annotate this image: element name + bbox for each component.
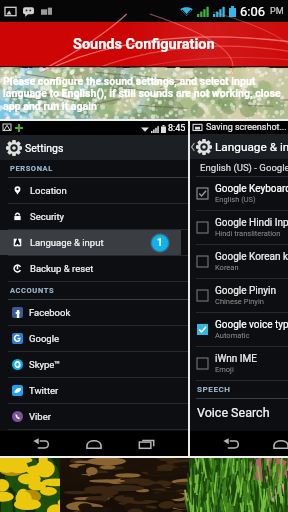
staticText: Saving screenshot... (206, 122, 287, 133)
button[interactable]: Back (190, 134, 288, 159)
staticText: Emoji (215, 365, 234, 374)
staticText: Please configure the sound settings, and… (3, 75, 286, 112)
staticText: Viber (29, 411, 51, 422)
button[interactable]: iWnn IME (190, 347, 288, 380)
staticText: 6:06 (240, 4, 266, 19)
button[interactable]: Recents (135, 432, 159, 456)
other: Back (191, 143, 195, 151)
button[interactable]: Location (0, 178, 188, 203)
button[interactable]: Back (29, 432, 53, 456)
staticText: Voice Search (197, 405, 270, 420)
staticText: 8:45 (168, 123, 186, 134)
button[interactable]: Google voice typing (190, 313, 288, 346)
staticText: Twitter (29, 385, 59, 396)
staticText: 1 (157, 237, 163, 249)
button[interactable]: Backup & reset (0, 256, 188, 281)
button[interactable]: Settings (0, 135, 188, 160)
staticText: WhatsApp (29, 437, 73, 448)
button[interactable]: Google Pinyin (190, 279, 288, 312)
staticText: Skype™ (29, 359, 61, 370)
staticText: English (US) - Google Keyboard (200, 162, 288, 173)
button[interactable]: Facebook (0, 300, 188, 325)
button[interactable]: Google Keyboard (190, 177, 288, 210)
staticText: SPEECH (197, 385, 231, 394)
staticText: Google Pinyin (215, 285, 276, 297)
staticText: Google voice typing (215, 319, 288, 331)
staticText: Settings (25, 142, 64, 154)
staticText: Hindi transliteration (215, 229, 281, 238)
button[interactable]: Google Hindi Input (190, 211, 288, 244)
button[interactable]: Home (82, 432, 106, 456)
button[interactable]: Language & input (0, 230, 188, 255)
button[interactable]: Voice Search (190, 399, 288, 425)
staticText: Google Korean keyb (215, 251, 288, 263)
button[interactable]: Security (0, 204, 188, 229)
button[interactable]: Google Korean keyb (190, 245, 288, 278)
staticText: Language & input (30, 237, 104, 248)
staticText: Chinese Pinyin (215, 297, 264, 306)
staticText: Backup & reset (30, 263, 94, 274)
staticText: English (US) (215, 195, 256, 204)
staticText: Google Keyboard (215, 183, 288, 195)
staticText: Location (30, 185, 67, 196)
staticText: PM (270, 6, 284, 17)
staticText: iWnn IME (215, 353, 257, 365)
button[interactable]: Skype™ (0, 352, 188, 377)
staticText: Facebook (29, 307, 71, 318)
staticText: Korean (215, 263, 239, 272)
staticText: ACCOUNTS (10, 286, 55, 295)
button[interactable]: Google (0, 326, 188, 351)
button[interactable]: Home (270, 433, 288, 455)
staticText: Sounds Configuration (73, 36, 215, 53)
button[interactable]: Viber (0, 404, 188, 429)
staticText: Automatic (215, 331, 250, 340)
staticText: Google Hindi Input (215, 217, 288, 229)
button[interactable]: WhatsApp (0, 430, 188, 455)
staticText: Security (30, 211, 65, 222)
staticText: PERSONAL (10, 164, 53, 173)
staticText: Language & input (215, 140, 288, 154)
button[interactable]: Back (220, 433, 242, 455)
staticText: Google (29, 333, 59, 344)
button[interactable]: Twitter (0, 378, 188, 403)
